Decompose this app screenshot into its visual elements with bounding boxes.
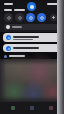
button[interactable]: Home [26, 102, 38, 114]
button[interactable]: Notification [3, 44, 61, 52]
button[interactable]: Notification [3, 33, 61, 42]
button[interactable]: Do not disturb [26, 13, 35, 22]
button[interactable]: Settings [57, 8, 60, 11]
button[interactable]: Camera [45, 102, 57, 114]
button[interactable]: Bluetooth [15, 13, 24, 22]
button[interactable]: Phone [7, 102, 19, 114]
button[interactable] [4, 24, 60, 30]
button[interactable]: Touch indicator [27, 2, 36, 11]
button[interactable]: Internet [4, 13, 13, 22]
button[interactable]: Add tile [50, 14, 57, 21]
button[interactable]: Flashlight [37, 13, 46, 22]
